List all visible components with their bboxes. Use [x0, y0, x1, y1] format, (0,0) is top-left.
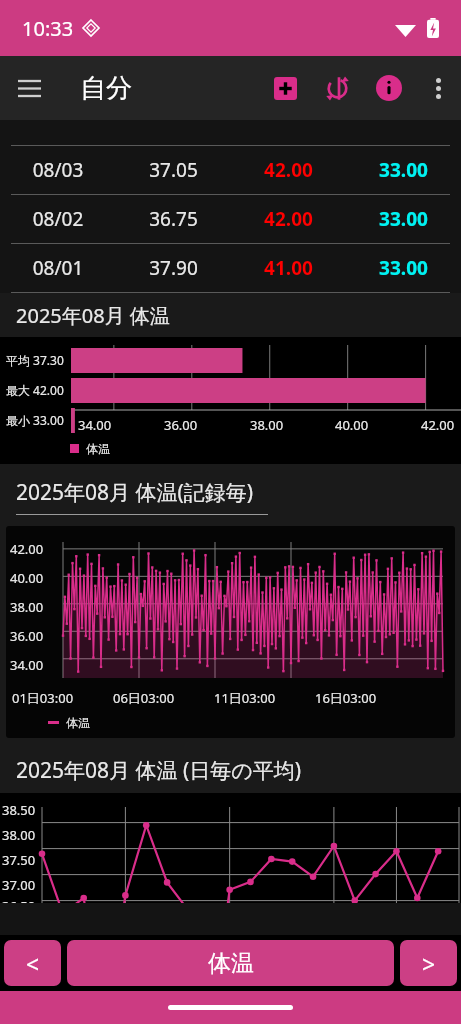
staticText: 40.00: [335, 416, 369, 434]
staticText: 42.00: [231, 206, 346, 232]
staticText: 33.00: [346, 157, 461, 183]
staticText: 体温: [86, 441, 110, 456]
staticText: 34.00: [10, 656, 44, 674]
button[interactable]: 体温: [67, 940, 394, 986]
staticText: 37.00: [2, 876, 36, 894]
staticText: 08/03: [0, 157, 116, 183]
button[interactable]: Previous: [4, 940, 61, 986]
staticText: 最大 42.00: [6, 382, 64, 398]
staticText: 37.05: [116, 157, 231, 183]
staticText: 08/02: [0, 206, 116, 232]
staticText: 10:33: [22, 15, 74, 42]
staticText: 2025年08月 体温 (日毎の平均): [16, 756, 302, 785]
staticText: 33.00: [346, 206, 461, 232]
staticText: 38.00: [10, 598, 44, 616]
staticText: 2025年08月 体温(記録毎): [16, 478, 254, 507]
staticText: 自分: [80, 72, 132, 105]
staticText: 体温: [66, 715, 90, 730]
staticText: >: [422, 948, 436, 979]
staticText: 37.50: [2, 851, 36, 869]
staticText: 42.00: [231, 157, 346, 183]
button[interactable]: 08/03: [0, 146, 461, 194]
staticText: <: [26, 948, 40, 979]
staticText: 01日03:00: [12, 689, 74, 707]
button[interactable]: Info: [363, 62, 415, 114]
button[interactable]: More options: [415, 65, 461, 111]
staticText: 36.75: [116, 206, 231, 232]
staticText: 41.00: [231, 255, 346, 281]
button[interactable]: 08/01: [0, 244, 461, 292]
button[interactable]: 08/02: [0, 195, 461, 243]
staticText: 37.90: [116, 255, 231, 281]
button[interactable]: Add: [259, 62, 311, 114]
staticText: 最小 33.00: [6, 412, 64, 428]
staticText: 08/01: [0, 255, 116, 281]
staticText: 16日03:00: [315, 689, 377, 707]
staticText: 38.00: [2, 826, 36, 844]
staticText: 2025年08月 体温: [16, 302, 170, 329]
staticText: 36.00: [10, 627, 44, 645]
staticText: 38.00: [250, 416, 284, 434]
staticText: 平均 37.30: [6, 352, 64, 368]
staticText: 体温: [208, 949, 254, 978]
button[interactable]: Refresh: [311, 62, 363, 114]
staticText: 42.00: [10, 540, 44, 558]
staticText: 38.50: [2, 801, 36, 819]
staticText: 36.00: [164, 416, 198, 434]
staticText: 06日03:00: [113, 689, 175, 707]
staticText: 11日03:00: [214, 689, 276, 707]
staticText: 36.50: [2, 897, 36, 903]
button[interactable]: Menu: [0, 59, 58, 117]
staticText: 33.00: [346, 255, 461, 281]
staticText: 42.00: [421, 416, 455, 434]
button[interactable]: Next: [400, 940, 457, 986]
staticText: 34.00: [78, 416, 112, 434]
staticText: 40.00: [10, 569, 44, 587]
